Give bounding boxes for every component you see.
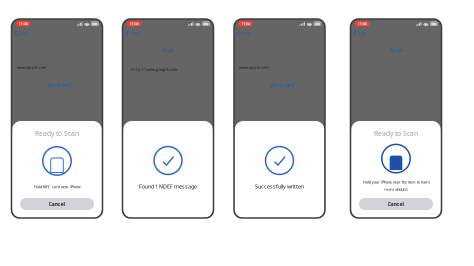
button[interactable]: Scan (160, 45, 176, 55)
staticText: 11:04 (357, 21, 366, 26)
staticText: Ready to Scan (35, 129, 79, 138)
staticText: Back (19, 30, 28, 36)
button[interactable]: Cancel (359, 198, 433, 210)
staticText: Back (358, 30, 367, 36)
staticText: Write NFC (270, 82, 295, 89)
staticText: Scan (390, 46, 402, 54)
staticText: 11:04 (18, 21, 27, 26)
button[interactable]: Back (11, 29, 31, 37)
staticText: Back (130, 30, 139, 36)
button[interactable]: Write NFC (45, 81, 74, 90)
button[interactable]: Back (350, 29, 370, 37)
button[interactable]: Back (234, 29, 253, 37)
staticText: Successfully written (255, 183, 304, 190)
staticText: http://www.google.com (130, 67, 177, 72)
button[interactable]: Write NFC (268, 81, 297, 90)
staticText: Hold your iPhone near the item to learn … (362, 179, 429, 192)
staticText: Hold NFC card near iPhone (33, 184, 80, 189)
button[interactable]: Cancel (20, 198, 94, 210)
staticText: Back (241, 30, 250, 36)
staticText: Cancel (48, 200, 65, 208)
button[interactable]: Scan (388, 45, 404, 55)
staticText: 11:04 (129, 21, 138, 26)
button[interactable]: Back (122, 29, 142, 37)
staticText: 11:04 (241, 21, 250, 26)
staticText: Scan (162, 46, 174, 54)
staticText: Ready to Scan (374, 129, 418, 138)
staticText: www.apple.com (239, 64, 269, 70)
staticText: www.apple.com (16, 64, 46, 70)
staticText: Found 1 NDEF message (139, 183, 197, 190)
staticText: Write NFC (47, 82, 72, 89)
staticText: Cancel (387, 200, 404, 208)
